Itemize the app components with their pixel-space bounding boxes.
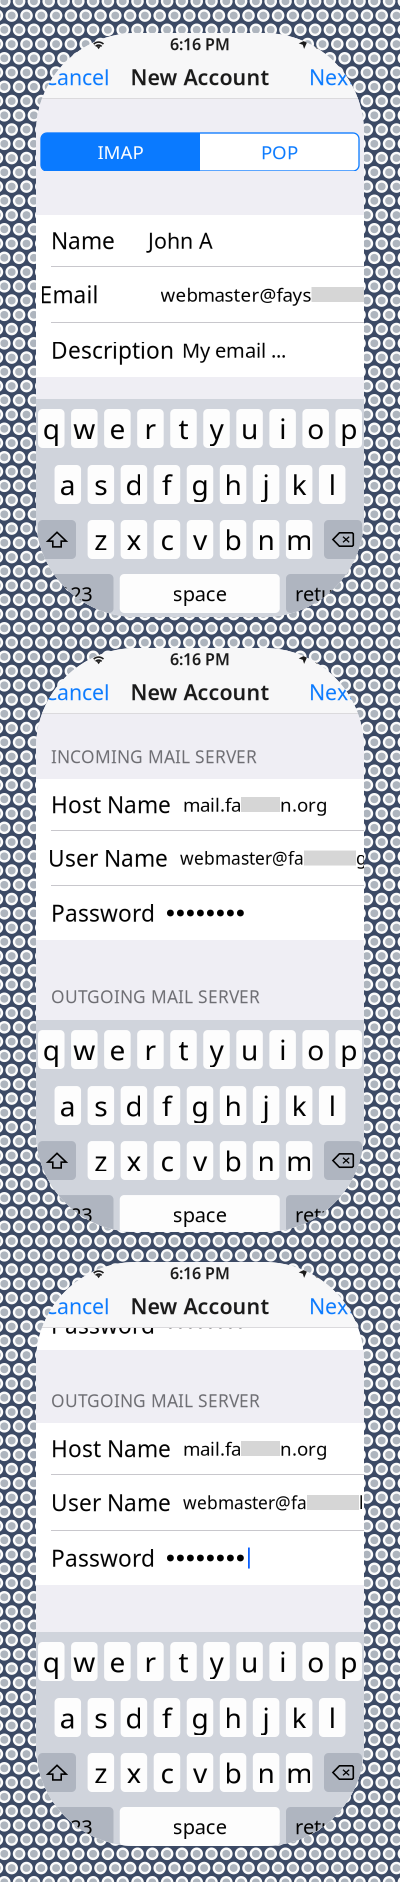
button[interactable]: i xyxy=(269,1030,296,1069)
button[interactable]: r xyxy=(137,409,164,448)
button[interactable]: k xyxy=(286,465,312,504)
button[interactable]: Shift xyxy=(38,1753,76,1792)
button[interactable]: p xyxy=(335,1030,362,1069)
button[interactable]: w xyxy=(71,1030,98,1069)
button[interactable]: q xyxy=(38,1030,64,1069)
button[interactable]: f xyxy=(154,1698,180,1737)
button[interactable]: d xyxy=(121,1698,147,1737)
button[interactable]: Next xyxy=(301,55,364,99)
button[interactable]: o xyxy=(302,1030,329,1069)
button[interactable]: u xyxy=(236,1030,263,1069)
button[interactable]: p xyxy=(335,1642,362,1681)
button[interactable]: t xyxy=(170,1642,197,1681)
button[interactable]: f xyxy=(154,1086,180,1125)
button[interactable]: h xyxy=(220,1698,246,1737)
button[interactable]: o xyxy=(302,1642,329,1681)
button[interactable]: 123 xyxy=(38,1807,113,1846)
button[interactable]: y xyxy=(203,1030,230,1069)
button[interactable]: r xyxy=(137,1030,164,1069)
button[interactable]: Cancel xyxy=(36,1284,118,1328)
button[interactable]: f xyxy=(154,465,180,504)
button[interactable]: Delete xyxy=(324,1141,362,1180)
button[interactable]: q xyxy=(38,1642,64,1681)
button[interactable]: y xyxy=(203,409,230,448)
button[interactable]: g xyxy=(187,465,213,504)
button[interactable]: i xyxy=(269,1642,296,1681)
button[interactable]: z xyxy=(88,1753,114,1792)
button[interactable]: space xyxy=(120,1807,280,1846)
button[interactable]: l xyxy=(319,465,345,504)
button[interactable]: t xyxy=(170,409,197,448)
button[interactable]: s xyxy=(88,1086,114,1125)
button[interactable]: n xyxy=(253,1753,279,1792)
button[interactable]: q xyxy=(38,409,64,448)
button[interactable]: return xyxy=(286,1807,362,1846)
button[interactable]: return xyxy=(286,1195,362,1234)
button[interactable]: i xyxy=(269,409,296,448)
button[interactable]: c xyxy=(154,1141,180,1180)
button[interactable]: return xyxy=(286,574,362,613)
button[interactable]: o xyxy=(302,409,329,448)
button[interactable]: z xyxy=(88,1141,114,1180)
button[interactable]: s xyxy=(88,465,114,504)
button[interactable]: m xyxy=(286,1141,312,1180)
button[interactable]: v xyxy=(187,1141,213,1180)
button[interactable]: b xyxy=(220,1753,246,1792)
button[interactable]: x xyxy=(121,1753,147,1792)
button[interactable]: Shift xyxy=(38,520,76,559)
button[interactable]: IMAP xyxy=(41,133,200,171)
button[interactable]: j xyxy=(253,465,279,504)
button[interactable]: h xyxy=(220,1086,246,1125)
button[interactable]: v xyxy=(187,520,213,559)
button[interactable]: Cancel xyxy=(36,55,118,99)
button[interactable]: n xyxy=(253,520,279,559)
button[interactable]: c xyxy=(154,520,180,559)
button[interactable]: Delete xyxy=(324,1753,362,1792)
button[interactable]: b xyxy=(220,520,246,559)
button[interactable]: Shift xyxy=(38,1141,76,1180)
button[interactable]: Cancel xyxy=(36,670,118,714)
button[interactable]: space xyxy=(120,574,280,613)
button[interactable]: w xyxy=(71,1642,98,1681)
button[interactable]: t xyxy=(170,1030,197,1069)
button[interactable]: n xyxy=(253,1141,279,1180)
button[interactable]: l xyxy=(319,1698,345,1737)
button[interactable]: c xyxy=(154,1753,180,1792)
button[interactable]: Next xyxy=(301,1284,364,1328)
button[interactable]: k xyxy=(286,1698,312,1737)
button[interactable]: u xyxy=(236,409,263,448)
button[interactable]: Next xyxy=(301,670,364,714)
button[interactable]: b xyxy=(220,1141,246,1180)
button[interactable]: e xyxy=(104,409,131,448)
button[interactable]: Delete xyxy=(324,520,362,559)
button[interactable]: x xyxy=(121,520,147,559)
button[interactable]: m xyxy=(286,1753,312,1792)
button[interactable]: POP xyxy=(200,133,359,171)
button[interactable]: w xyxy=(71,409,98,448)
button[interactable]: y xyxy=(203,1642,230,1681)
button[interactable]: g xyxy=(187,1086,213,1125)
button[interactable]: a xyxy=(55,465,81,504)
button[interactable]: 123 xyxy=(38,574,113,613)
button[interactable]: d xyxy=(121,465,147,504)
button[interactable]: space xyxy=(120,1195,280,1234)
button[interactable]: g xyxy=(187,1698,213,1737)
button[interactable]: v xyxy=(187,1753,213,1792)
button[interactable]: l xyxy=(319,1086,345,1125)
button[interactable]: j xyxy=(253,1698,279,1737)
button[interactable]: d xyxy=(121,1086,147,1125)
button[interactable]: s xyxy=(88,1698,114,1737)
button[interactable]: k xyxy=(286,1086,312,1125)
button[interactable]: j xyxy=(253,1086,279,1125)
button[interactable]: 123 xyxy=(38,1195,113,1234)
button[interactable]: e xyxy=(104,1030,131,1069)
button[interactable]: r xyxy=(137,1642,164,1681)
button[interactable]: p xyxy=(335,409,362,448)
button[interactable]: u xyxy=(236,1642,263,1681)
button[interactable]: h xyxy=(220,465,246,504)
button[interactable]: a xyxy=(55,1086,81,1125)
button[interactable]: x xyxy=(121,1141,147,1180)
button[interactable]: a xyxy=(55,1698,81,1737)
button[interactable]: m xyxy=(286,520,312,559)
button[interactable]: z xyxy=(88,520,114,559)
